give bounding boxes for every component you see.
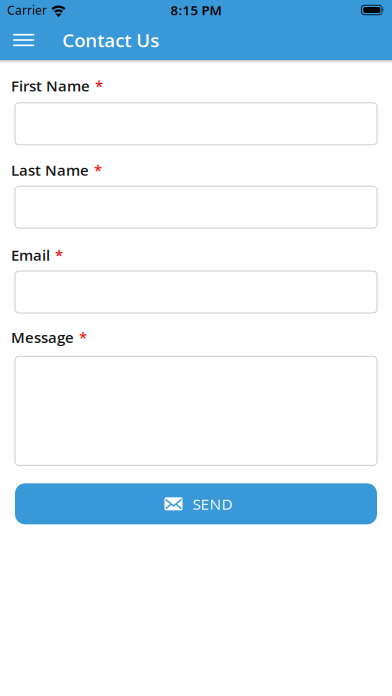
button[interactable]: Menu — [13, 34, 34, 46]
staticText: Email — [11, 245, 50, 265]
button[interactable]: Text input — [15, 271, 377, 313]
staticText: Contact Us — [62, 27, 159, 53]
staticText: Carrier — [7, 2, 47, 18]
staticText: Last Name — [11, 160, 89, 180]
button[interactable]: Text input — [15, 356, 377, 465]
staticText: * — [95, 75, 103, 96]
staticText: * — [55, 245, 63, 265]
staticText: First Name — [11, 75, 90, 96]
staticText: SEND — [192, 493, 232, 514]
button[interactable]: Send — [15, 483, 377, 524]
staticText: * — [94, 160, 102, 180]
staticText: Message — [11, 327, 74, 347]
button[interactable]: Text input — [15, 103, 377, 145]
staticText: 8:15 PM — [170, 1, 221, 19]
button[interactable]: Text input — [15, 186, 377, 228]
staticText: * — [79, 327, 87, 347]
